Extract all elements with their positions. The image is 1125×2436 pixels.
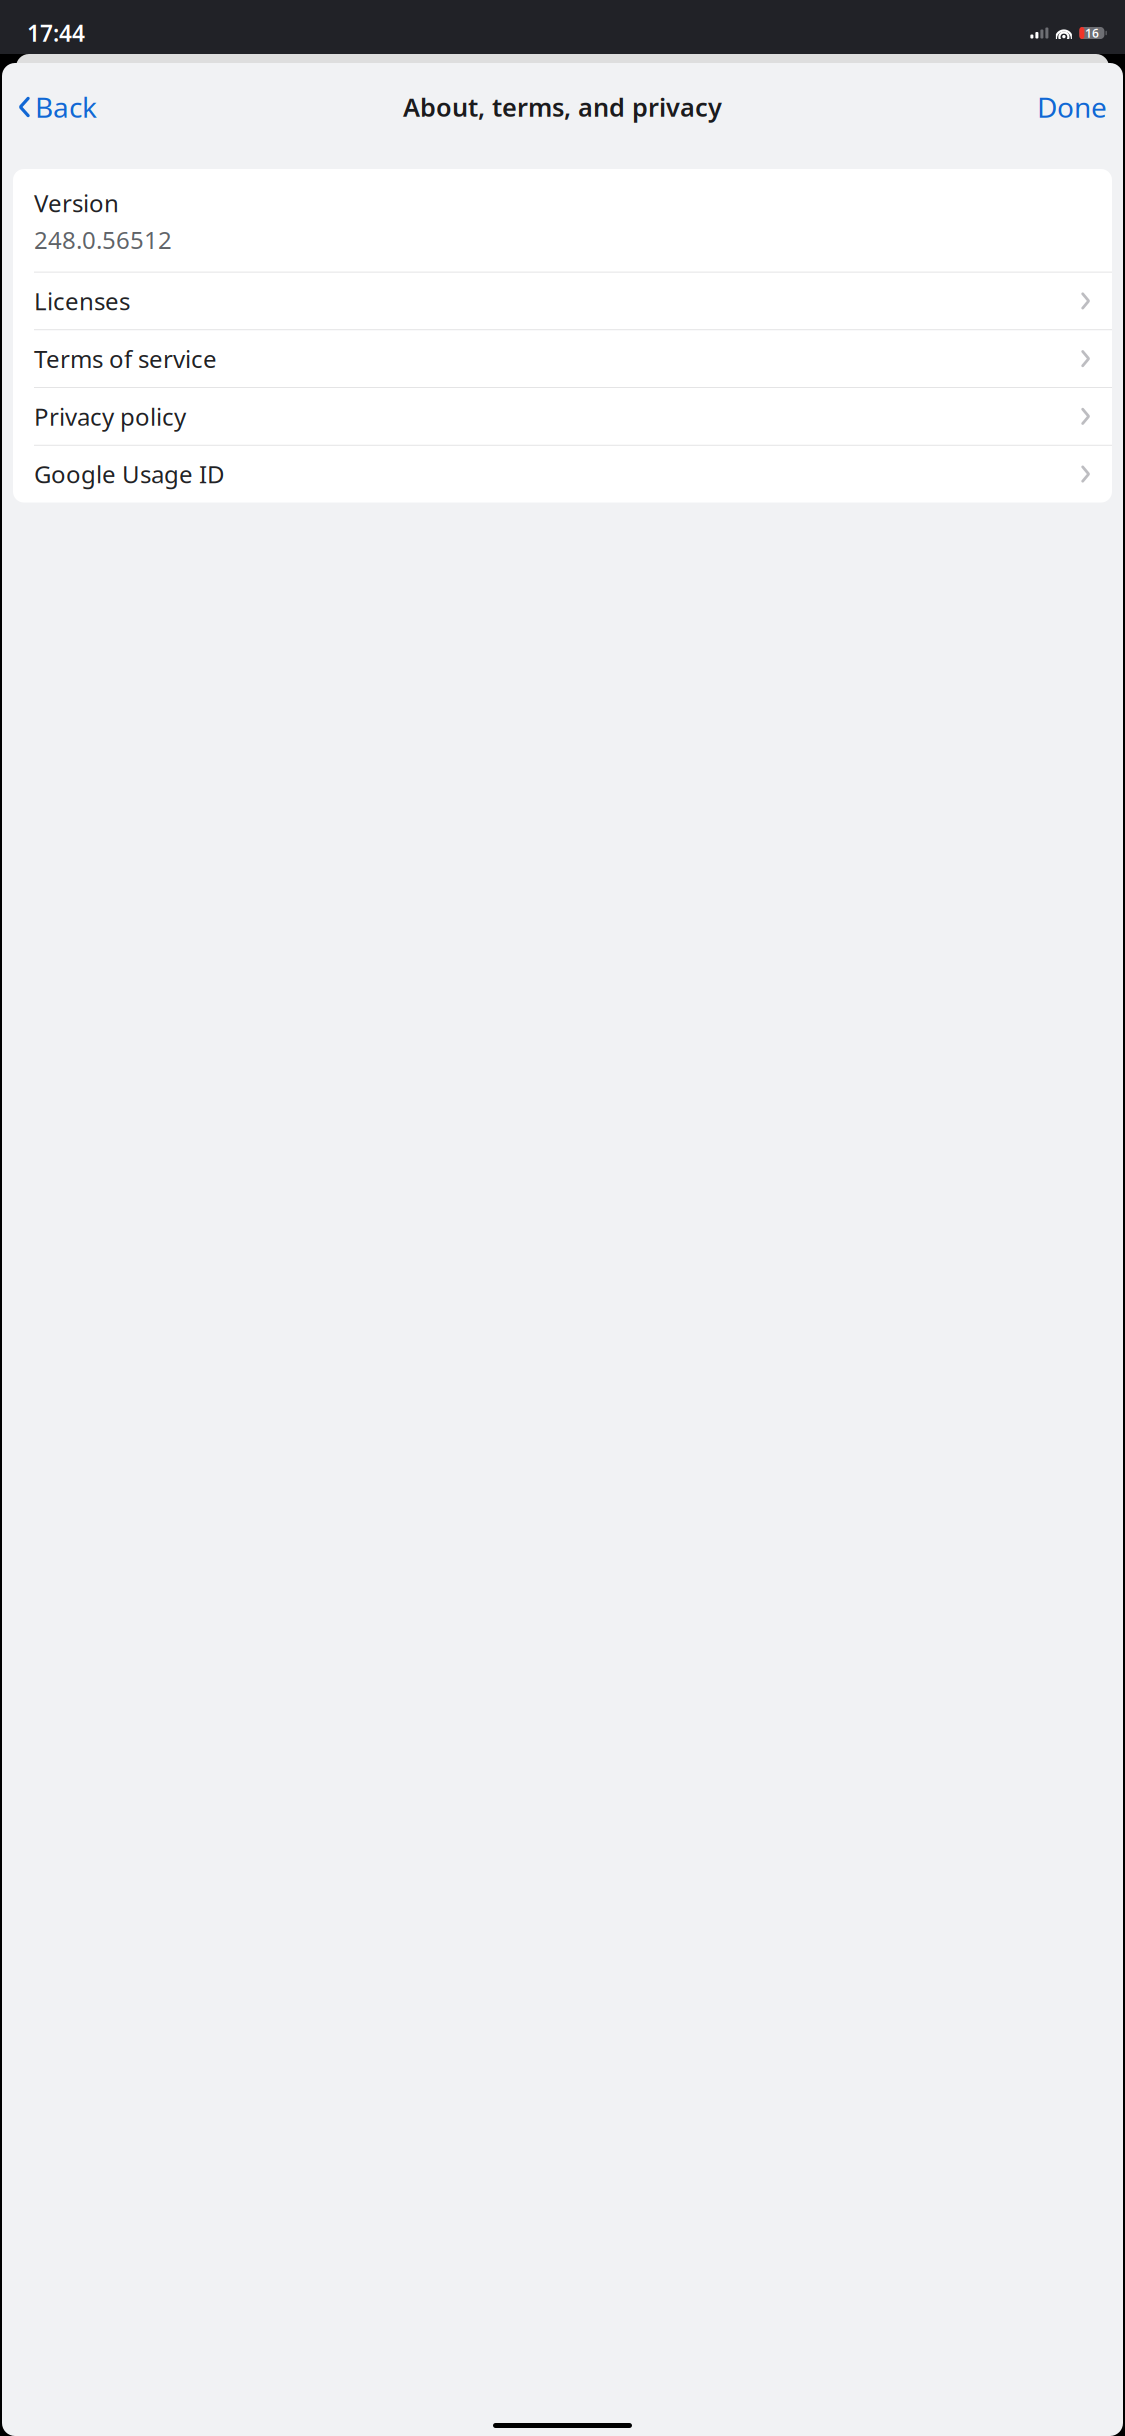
staticText: About, terms, and privacy — [403, 90, 722, 124]
staticText: Done — [1037, 88, 1107, 126]
button[interactable]: Done — [1031, 80, 1113, 134]
button[interactable]: Back — [12, 80, 103, 134]
button[interactable]: Licenses — [13, 272, 1112, 329]
staticText: Version — [34, 187, 119, 219]
staticText: Google Usage ID — [34, 458, 225, 490]
staticText: Privacy policy — [34, 400, 186, 432]
button[interactable]: Privacy policy — [13, 388, 1112, 445]
staticText: Back — [35, 88, 97, 126]
staticText: 248.0.56512 — [34, 224, 172, 256]
staticText: 17:44 — [27, 18, 85, 48]
staticText: 16 — [1085, 25, 1099, 41]
staticText: Terms of service — [34, 343, 217, 375]
button[interactable]: Google Usage ID — [13, 445, 1112, 502]
staticText: Licenses — [34, 285, 130, 317]
button[interactable]: Terms of service — [13, 330, 1112, 387]
